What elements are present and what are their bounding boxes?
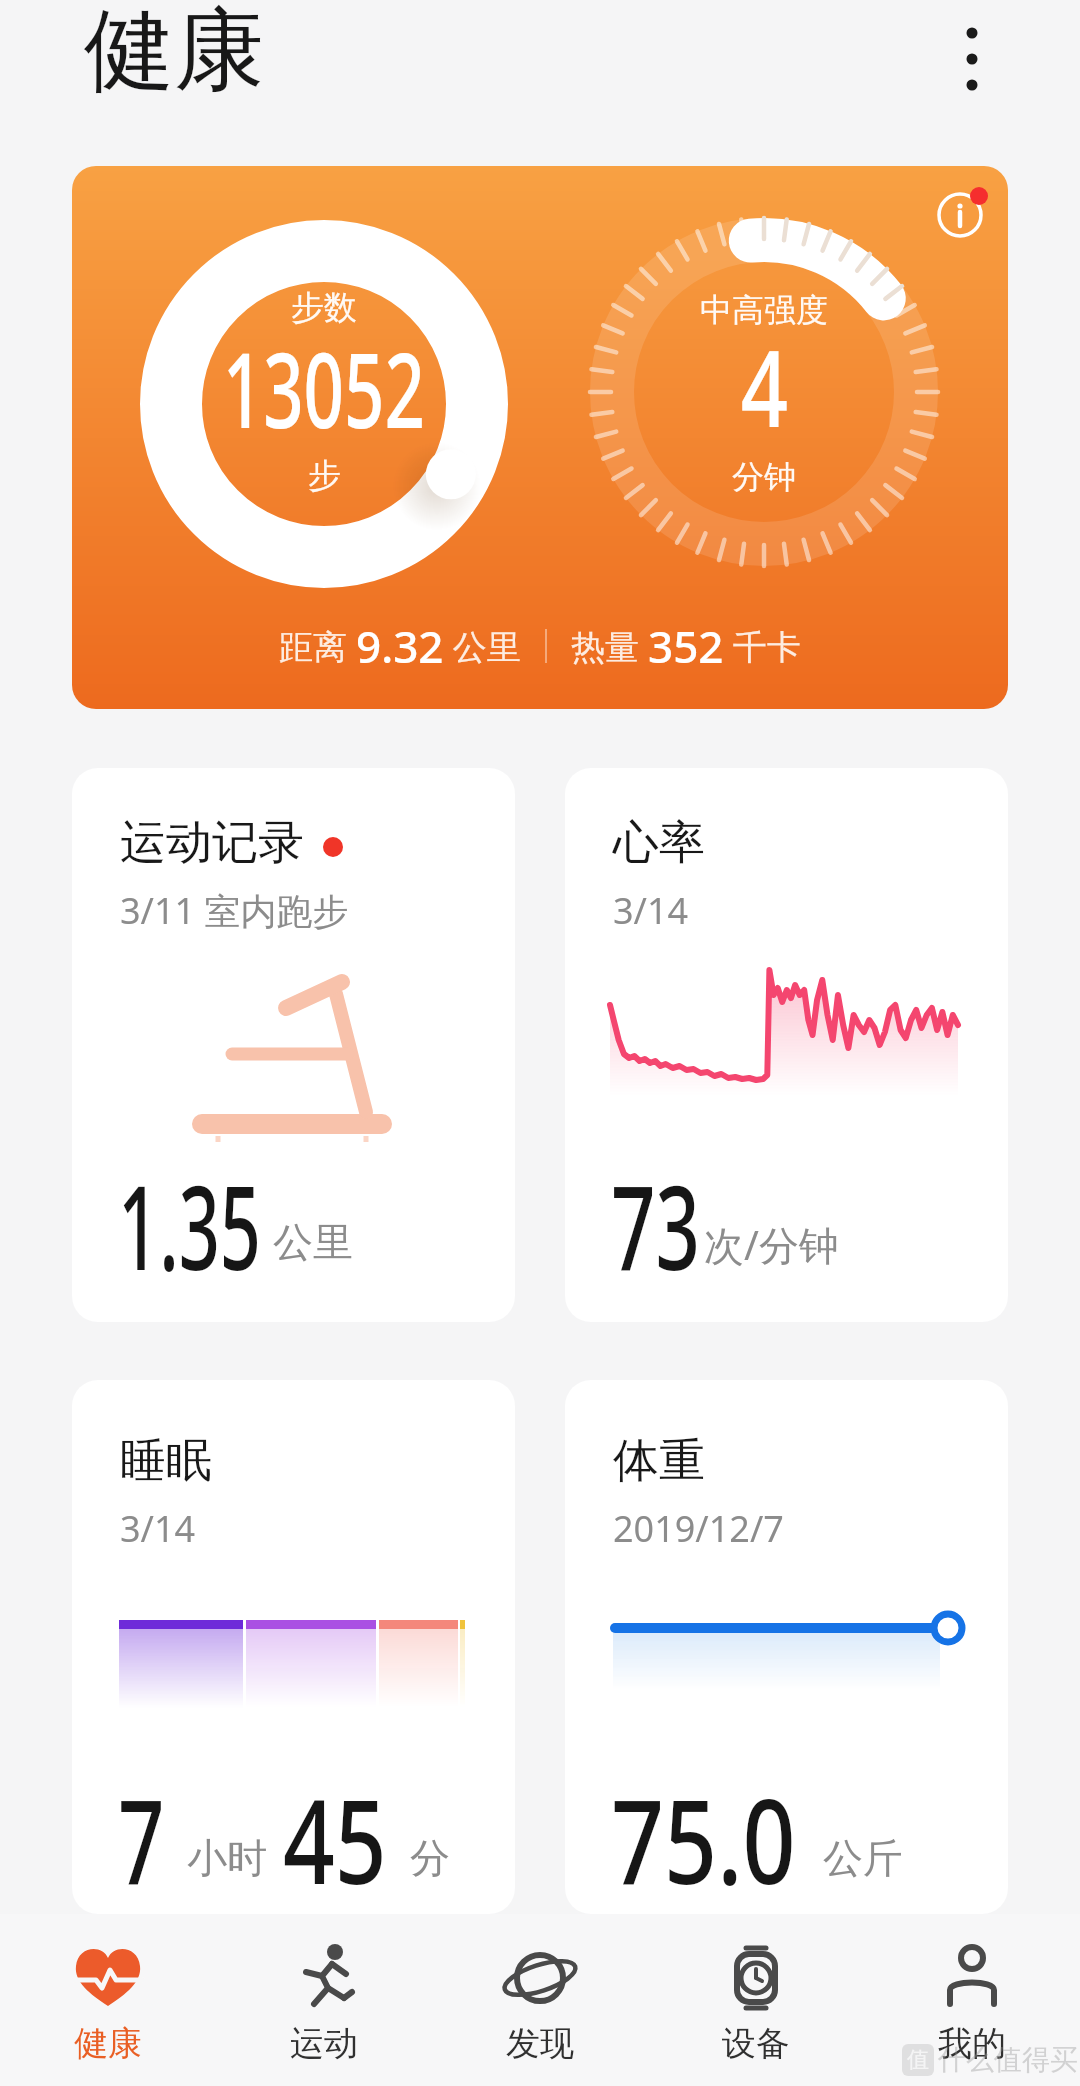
button[interactable]: 健康 [0, 1914, 216, 2086]
staticText: 运动记录 [120, 814, 304, 872]
staticText: 75.0 [611, 1760, 796, 1914]
staticText: 健康 [74, 2022, 142, 2065]
staticText: 4 [741, 314, 788, 458]
staticText: 运动 [290, 2022, 358, 2065]
staticText: 分钟 [732, 457, 796, 497]
staticText: 7 [118, 1760, 165, 1914]
button[interactable]: 设备 [648, 1914, 864, 2086]
staticText: 次/分钟 [704, 1217, 839, 1272]
staticText: 公里 [273, 1217, 353, 1267]
button[interactable] [942, 10, 1002, 110]
button[interactable]: 我的 [864, 1914, 1080, 2086]
staticText: 心率 [613, 814, 705, 872]
staticText: 9.32 [356, 616, 444, 676]
staticText: 设备 [722, 2022, 790, 2065]
staticText: 73 [611, 1146, 700, 1304]
staticText: 1.35 [118, 1146, 261, 1304]
staticText: 352 [648, 616, 724, 676]
staticText: 我的 [938, 2022, 1006, 2065]
staticText: 距离 [279, 623, 356, 669]
staticText: 3/14 [613, 886, 689, 935]
staticText: 2019/12/7 [613, 1504, 784, 1553]
staticText: 睡眠 [120, 1432, 212, 1490]
staticText: 小时 [187, 1833, 267, 1883]
staticText: 公斤 [823, 1833, 903, 1883]
staticText: 中高强度 [700, 290, 828, 330]
button[interactable]: 运动记录 [72, 768, 515, 1322]
staticText: 公里 [444, 623, 521, 669]
staticText: 步数 [291, 287, 357, 329]
staticText: 3/14 [120, 1504, 196, 1553]
staticText: 体重 [613, 1432, 705, 1490]
button[interactable]: 睡眠 [72, 1380, 515, 1914]
button[interactable]: 发现 [432, 1914, 648, 2086]
staticText: 分 [410, 1833, 450, 1883]
button[interactable]: 体重 [565, 1380, 1008, 1914]
button[interactable]: 心率 [565, 768, 1008, 1322]
staticText: 13052 [223, 317, 425, 459]
staticText: 发现 [506, 2022, 574, 2065]
staticText: 健康 [84, 0, 264, 107]
button[interactable]: 步数 [72, 166, 1008, 709]
staticText: 3/11 室内跑步 [120, 886, 349, 935]
button[interactable]: 运动 [216, 1914, 432, 2086]
staticText: 热量 [571, 623, 648, 669]
staticText: 什么值得买 [938, 2042, 1078, 2077]
staticText: 45 [283, 1760, 387, 1914]
staticText: 步 [308, 455, 341, 497]
staticText: 千卡 [724, 623, 801, 669]
staticText: 值 [907, 2046, 929, 2074]
